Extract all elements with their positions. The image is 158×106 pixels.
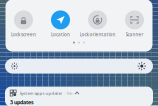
staticText: Location	[51, 31, 70, 38]
staticText: · 1m	[64, 90, 72, 96]
staticText: 3 updates	[10, 99, 34, 106]
button[interactable]: Brightness	[5, 59, 153, 74]
button[interactable]: Location	[42, 10, 79, 38]
button[interactable]: System apps updater	[5, 87, 153, 106]
staticText: System apps updater	[19, 90, 62, 96]
button[interactable]: Lock screen	[5, 10, 42, 38]
staticText: Scanner	[125, 31, 143, 38]
staticText: Lock orientation	[79, 31, 115, 38]
button[interactable]: Lock orientation	[79, 10, 116, 38]
button[interactable]: Scanner	[116, 10, 153, 38]
staticText: Lock screen	[11, 31, 36, 38]
